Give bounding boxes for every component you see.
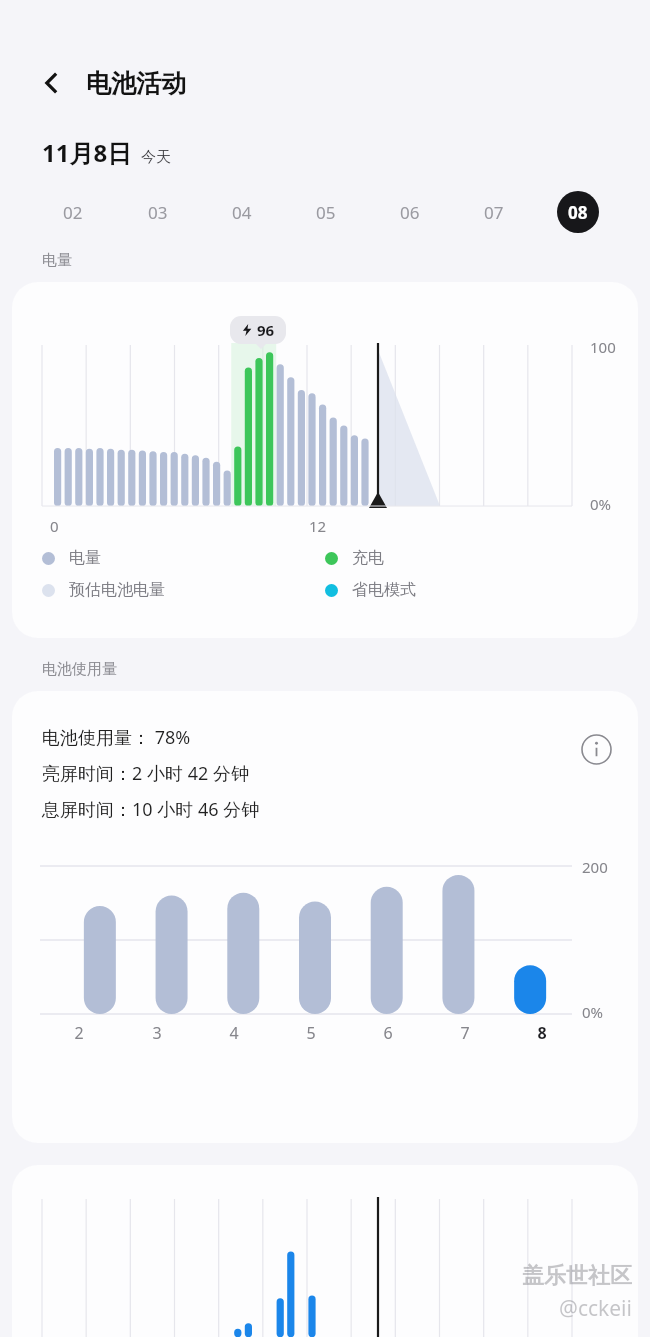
staticText: 100 [590,337,616,357]
staticText: 今天 [141,148,171,167]
staticText: 充电 [352,548,384,568]
staticText: 0% [582,1002,604,1022]
staticText: 亮屏时间：2 小时 42 分钟 [42,761,249,786]
staticText: 96 [257,320,275,340]
staticText: 4 [229,1022,239,1044]
staticText: 08 [568,201,588,224]
staticText: @cckeii [559,1294,632,1323]
button[interactable]: 03 [115,185,200,239]
staticText: 2 [74,1022,84,1044]
staticText: 电池使用量： 78% [42,725,191,750]
staticText: 04 [232,201,252,224]
staticText: 电池使用量 [42,660,117,679]
button[interactable]: 电池使用量： 78% [12,691,638,1143]
staticText: 03 [148,201,168,224]
staticText: 11月8日 [42,136,132,169]
button[interactable]: Info [574,727,618,771]
button[interactable]: 05 [284,185,368,239]
staticText: 预估电池电量 [69,580,165,600]
staticText: 6 [383,1022,393,1044]
button[interactable]: 04 [200,185,284,239]
staticText: 电池活动 [86,68,186,99]
staticText: 电量 [42,251,72,270]
button[interactable]: 08 [536,185,620,239]
staticText: 7 [460,1022,470,1044]
button[interactable]: Back [30,61,74,105]
staticText: 06 [400,201,420,224]
staticText: 02 [63,201,83,224]
button[interactable]: 02 [30,185,115,239]
button[interactable]: 07 [452,185,536,239]
button[interactable]: 100 [12,282,638,638]
staticText: 3 [152,1022,162,1044]
staticText: 0 [50,516,59,536]
staticText: 0% [590,494,612,514]
button[interactable] [12,1165,638,1337]
staticText: 息屏时间：10 小时 46 分钟 [42,797,260,822]
staticText: 5 [306,1022,316,1044]
staticText: 电量 [69,548,101,568]
staticText: 07 [484,201,504,224]
staticText: 省电模式 [352,580,416,600]
staticText: 盖乐世社区 [522,1262,632,1290]
staticText: 200 [582,857,608,877]
button[interactable]: 06 [368,185,452,239]
staticText: 8 [537,1022,547,1044]
staticText: 12 [309,516,327,536]
staticText: 05 [316,201,336,224]
